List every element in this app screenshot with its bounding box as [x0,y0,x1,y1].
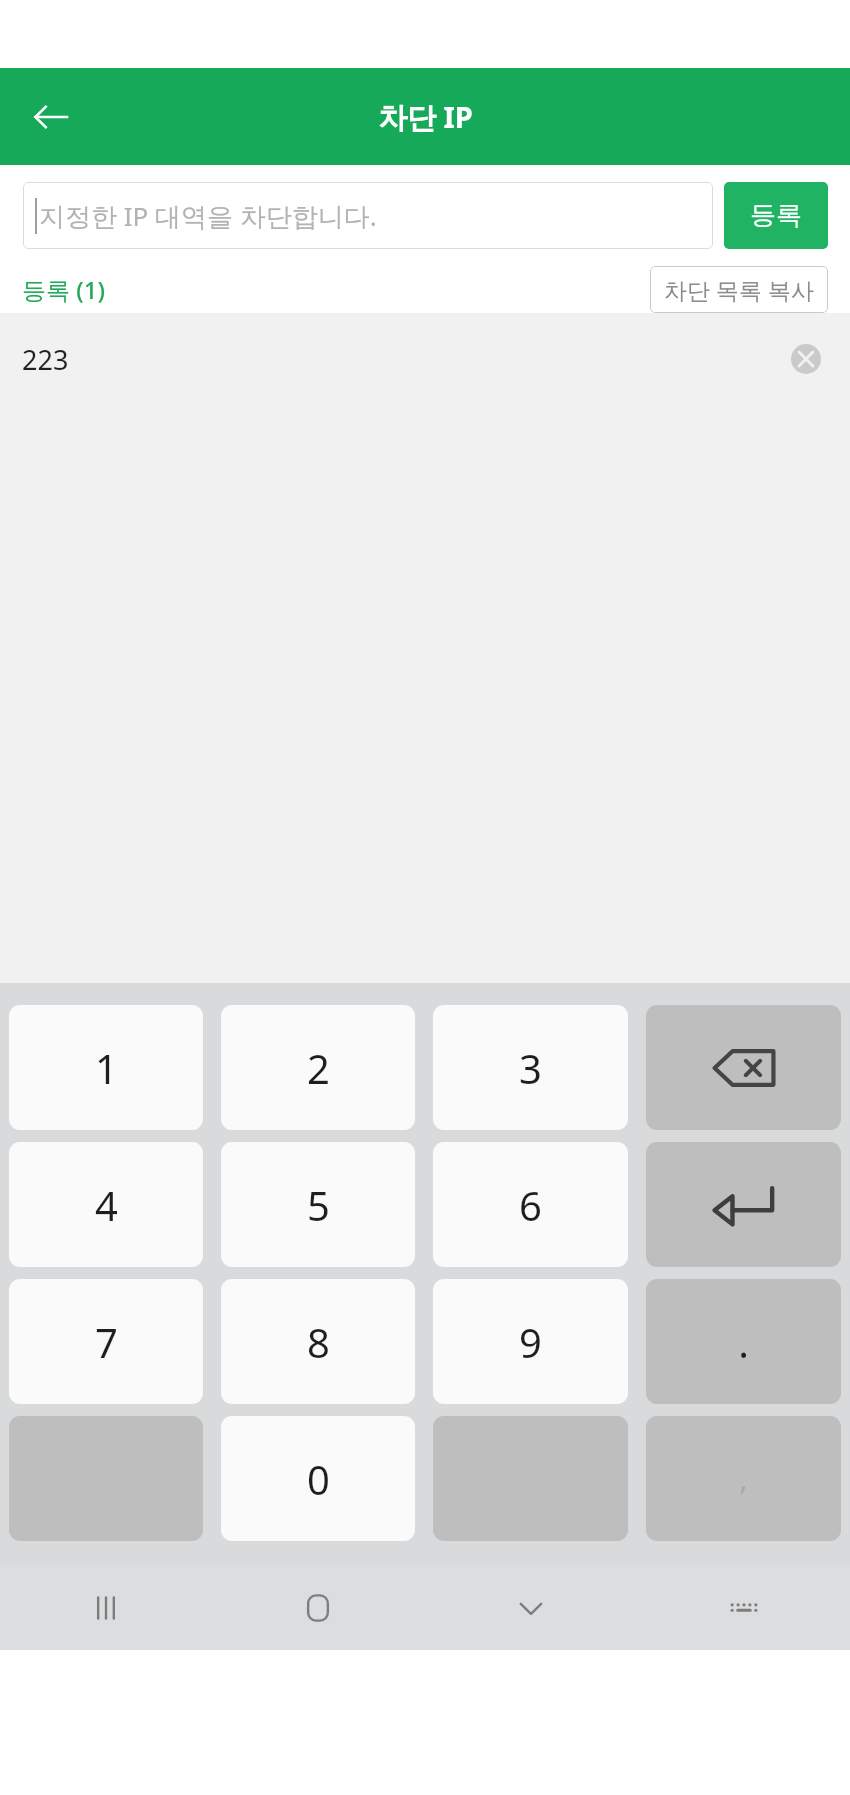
button[interactable]: 2 [221,1005,415,1130]
staticText: . [738,1315,749,1369]
button[interactable]: 4 [9,1142,203,1267]
staticText: 9 [519,1315,542,1369]
button[interactable]: 223 [0,313,850,405]
button[interactable]: Hide keyboard [424,1565,637,1650]
staticText: 4 [95,1178,118,1232]
button[interactable]: Remove 223 [782,335,830,383]
button[interactable]: 5 [221,1142,415,1267]
button[interactable]: 8 [221,1279,415,1404]
button[interactable]: 3 [433,1005,628,1130]
button[interactable]: 9 [433,1279,628,1404]
staticText: 1 [95,1041,118,1095]
staticText: 7 [95,1315,118,1369]
button[interactable]: 차단 목록 복사 [650,266,828,313]
staticText: , [739,1458,748,1499]
staticText: 차단 IP [378,97,473,137]
button[interactable]: 등록 (1) [0,273,105,306]
button[interactable]: Enter [646,1142,841,1267]
button[interactable]: 1 [9,1005,203,1130]
button[interactable]: 등록 [724,182,828,249]
button[interactable]: Change keyboard [637,1565,850,1650]
button[interactable]: 7 [9,1279,203,1404]
button[interactable]: 6 [433,1142,628,1267]
staticText: 0 [307,1452,330,1506]
staticText: 3 [519,1041,542,1095]
staticText: 6 [519,1178,542,1232]
staticText: 등록 [750,199,802,232]
button[interactable]: Home [212,1565,424,1650]
button[interactable]: Backspace [646,1005,841,1130]
button[interactable]: Recents [0,1565,212,1650]
staticText: 2 [307,1041,330,1095]
staticText: 차단 목록 복사 [664,274,814,305]
staticText: 8 [307,1315,330,1369]
button[interactable]: 0 [221,1416,415,1541]
button[interactable]: . [646,1279,841,1404]
button[interactable]: 지정한 IP 대역을 차단합니다. [23,182,713,249]
button[interactable]: Back [18,84,84,150]
staticText: 5 [307,1178,330,1232]
staticText: 223 [22,341,69,378]
staticText: 지정한 IP 대역을 차단합니다. [39,198,377,234]
